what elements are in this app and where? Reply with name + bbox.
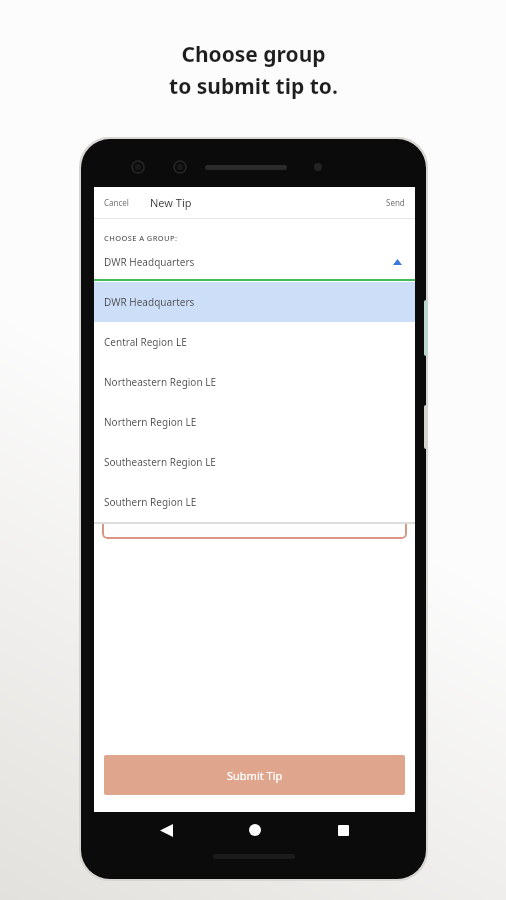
button[interactable]: Recent apps bbox=[326, 813, 360, 847]
other: Collapse dropdown bbox=[393, 259, 402, 265]
staticText: Cancel bbox=[104, 197, 129, 208]
staticText: Southern Region LE bbox=[104, 495, 197, 509]
staticText: New Tip bbox=[150, 195, 192, 210]
button[interactable]: Home bbox=[238, 813, 272, 847]
staticText: Choose group bbox=[181, 40, 326, 69]
staticText: CHOOSE A GROUP: bbox=[104, 233, 178, 243]
staticText: Send bbox=[386, 197, 405, 208]
staticText: Northeastern Region LE bbox=[104, 375, 216, 389]
staticText: Southeastern Region LE bbox=[104, 455, 216, 469]
button[interactable]: Northeastern Region LE bbox=[94, 362, 415, 402]
button[interactable]: Submit Tip bbox=[104, 755, 405, 795]
button[interactable]: Cancel bbox=[98, 193, 135, 212]
staticText: Northern Region LE bbox=[104, 415, 197, 429]
button[interactable]: Southeastern Region LE bbox=[94, 442, 415, 482]
button[interactable]: Back bbox=[149, 813, 183, 847]
staticText: DWR Headquarters bbox=[104, 255, 195, 269]
staticText: Central Region LE bbox=[104, 335, 187, 349]
staticText: Submit Tip bbox=[227, 768, 283, 783]
button[interactable]: DWR Headquarters bbox=[94, 282, 415, 322]
button[interactable]: Central Region LE bbox=[94, 322, 415, 362]
button[interactable]: Southern Region LE bbox=[94, 482, 415, 522]
button[interactable]: DWR Headquarters bbox=[94, 249, 415, 275]
staticText: DWR Headquarters bbox=[104, 295, 195, 309]
button[interactable] bbox=[102, 459, 407, 539]
staticText: to submit tip to. bbox=[169, 72, 338, 101]
button[interactable]: Northern Region LE bbox=[94, 402, 415, 442]
button[interactable]: Send bbox=[380, 193, 411, 212]
